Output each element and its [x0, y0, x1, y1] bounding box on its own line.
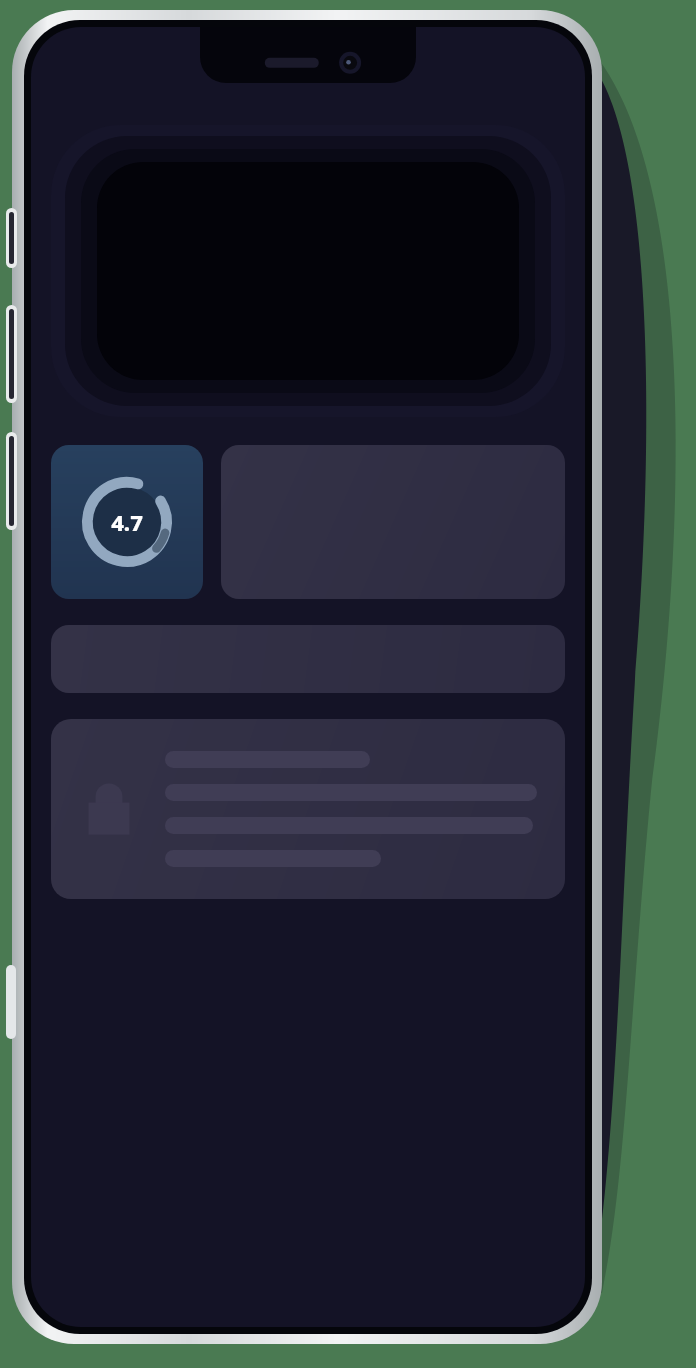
button[interactable]: Loading banner: [51, 625, 565, 693]
staticText: 4.7: [111, 507, 143, 537]
button[interactable]: Score 4.7: [51, 445, 203, 599]
button[interactable]: Media player: [51, 125, 565, 417]
button[interactable]: Locked content: [51, 719, 565, 899]
